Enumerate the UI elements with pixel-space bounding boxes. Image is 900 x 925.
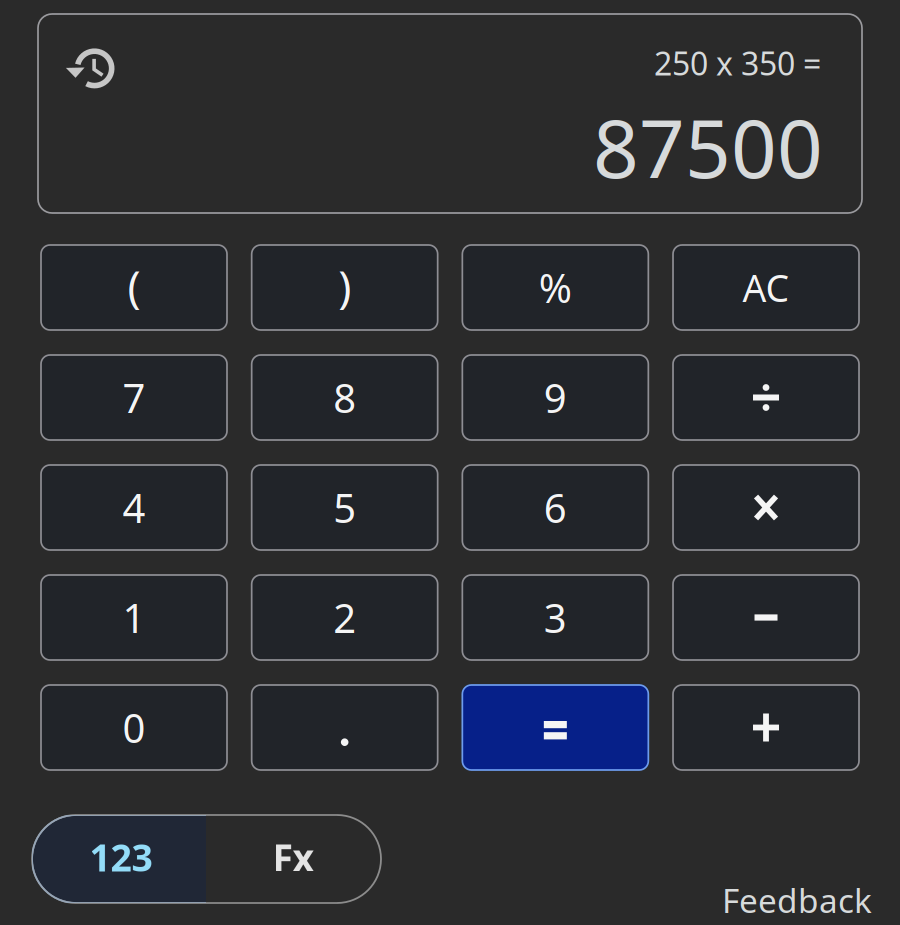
button[interactable]: 123 [32,815,381,903]
button[interactable] [673,355,859,440]
staticText: 123 [89,832,152,882]
button[interactable] [462,685,648,770]
button[interactable]: 8 [252,355,438,440]
staticText: 9 [544,371,567,424]
button[interactable]: % [462,245,648,330]
button[interactable]: 4 [41,465,227,550]
button[interactable]: 1 [41,575,227,660]
staticText: 6 [544,481,567,534]
button[interactable]: Feedback [672,880,872,920]
staticText: 250 x 350 = [654,42,821,84]
staticText: % [539,261,572,314]
button[interactable] [673,465,859,550]
staticText: ( [127,256,140,315]
staticText: 2 [333,591,356,644]
button[interactable]: 7 [41,355,227,440]
button[interactable]: ( [41,245,227,330]
staticText: 87500 [593,94,823,200]
button[interactable] [673,575,859,660]
staticText: 8 [333,371,356,424]
button[interactable]: History [62,40,118,96]
staticText: ) [338,256,351,315]
button[interactable]: 3 [462,575,648,660]
button[interactable]: 9 [462,355,648,440]
staticText: 3 [544,591,567,644]
button[interactable]: ) [252,245,438,330]
button[interactable]: 5 [252,465,438,550]
button[interactable] [673,685,859,770]
button[interactable]: 0 [41,685,227,770]
staticText: 7 [122,371,145,424]
button[interactable]: AC [673,245,859,330]
staticText: 5 [333,481,356,534]
staticText: 1 [122,591,145,644]
staticText: Feedback [722,878,872,922]
button[interactable]: 2 [252,575,438,660]
button[interactable]: 6 [462,465,648,550]
button[interactable] [252,685,438,770]
staticText: AC [742,263,789,312]
staticText: 4 [122,481,145,534]
staticText: Fx [272,832,314,882]
staticText: 0 [122,701,145,754]
